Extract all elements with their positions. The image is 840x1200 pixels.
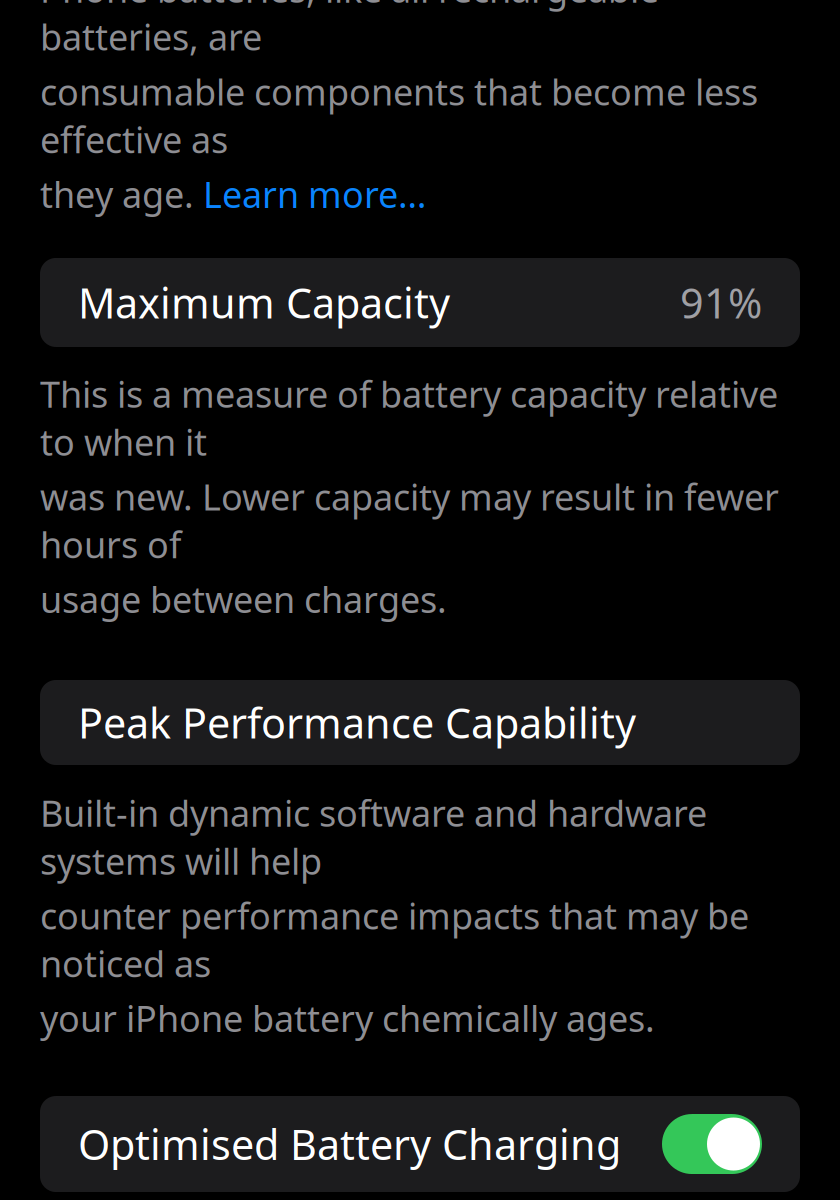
staticText: was new. Lower capacity may result in fe… <box>40 473 779 568</box>
staticText: 91% <box>680 275 762 330</box>
staticText: consumable components that become less e… <box>40 67 758 163</box>
staticText: Phone batteries, like all rechargeable b… <box>40 0 659 60</box>
staticText: Maximum Capacity <box>78 275 450 330</box>
staticText: Built-in dynamic software and hardware s… <box>40 789 707 885</box>
button[interactable]: Peak Performance Capability <box>40 680 800 765</box>
staticText: This is a measure of battery capacity re… <box>40 370 778 466</box>
staticText: counter performance impacts that may be … <box>40 892 749 987</box>
staticText: Optimised Battery Charging <box>78 1117 621 1171</box>
staticText: usage between charges. <box>40 575 447 623</box>
button[interactable]: Learn more… <box>203 170 426 218</box>
staticText: Peak Performance Capability <box>78 695 636 750</box>
button[interactable]: Maximum Capacity <box>40 258 800 347</box>
button[interactable]: Optimised Battery Charging <box>40 1096 800 1192</box>
staticText: your iPhone battery chemically ages. <box>40 994 655 1042</box>
staticText: they age. <box>40 170 203 218</box>
staticText: Learn more… <box>203 170 426 218</box>
